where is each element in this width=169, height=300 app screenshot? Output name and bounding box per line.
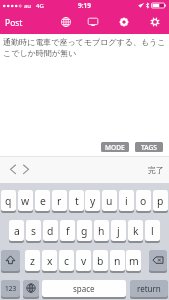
staticText: n (114, 254, 121, 268)
staticText: t (75, 194, 79, 208)
staticText: o (140, 194, 147, 208)
button[interactable] (85, 11, 101, 34)
button[interactable]: i (119, 190, 134, 212)
button[interactable] (23, 280, 39, 298)
button[interactable]: return (130, 280, 168, 298)
staticText: r (57, 194, 62, 208)
staticText: z (30, 254, 35, 268)
button[interactable]: space (42, 280, 126, 298)
button[interactable]: g (77, 220, 92, 242)
button[interactable]: s (26, 220, 41, 242)
staticText: c (64, 254, 69, 268)
staticText: Post (5, 17, 23, 29)
button[interactable]: Post (5, 17, 23, 29)
staticText: v (81, 254, 87, 268)
staticText: l (151, 224, 154, 238)
staticText: j (117, 224, 120, 238)
button[interactable]: o (136, 190, 151, 212)
button[interactable]: d (43, 220, 58, 242)
button[interactable]: 123 (1, 280, 20, 298)
button[interactable]: k (128, 220, 143, 242)
button[interactable]: m (126, 250, 141, 272)
button[interactable]: p (153, 190, 168, 212)
staticText: 4G (36, 2, 44, 10)
staticText: a (14, 224, 20, 238)
staticText: MODE (105, 143, 125, 152)
staticText: 完了 (148, 165, 164, 175)
button[interactable]: 完了 (148, 165, 164, 175)
button[interactable]: l (145, 220, 160, 242)
button[interactable]: r (52, 190, 67, 212)
button[interactable]: h (94, 220, 109, 242)
staticText: q (5, 194, 12, 208)
button[interactable] (116, 11, 132, 34)
staticText: 123 (5, 284, 17, 293)
staticText: 9:19 (78, 1, 91, 10)
button[interactable]: y (85, 190, 100, 212)
button[interactable]: v (76, 250, 91, 272)
button[interactable]: b (93, 250, 108, 272)
staticText: x (47, 254, 53, 268)
staticText: h (98, 224, 105, 238)
button[interactable] (58, 11, 74, 34)
staticText: d (47, 224, 54, 238)
staticText: space (73, 283, 95, 294)
button[interactable]: n (110, 250, 125, 272)
button[interactable] (147, 11, 163, 34)
button[interactable] (149, 250, 167, 272)
staticText: return (137, 283, 161, 294)
staticText: w (21, 194, 30, 208)
button[interactable]: z (25, 250, 40, 272)
button[interactable]: MODE (101, 142, 129, 152)
staticText: p (157, 194, 164, 208)
button[interactable]: x (42, 250, 57, 272)
staticText: i (125, 194, 128, 208)
button[interactable]: u (102, 190, 117, 212)
staticText: TAGS (141, 143, 157, 152)
staticText: e (40, 194, 46, 208)
button[interactable]: a (9, 220, 24, 242)
staticText: f (66, 224, 70, 238)
button[interactable]: q (1, 190, 16, 212)
staticText: au (24, 2, 32, 10)
staticText: m (129, 254, 139, 268)
staticText: b (97, 254, 104, 268)
button[interactable] (1, 250, 20, 272)
button[interactable]: c (59, 250, 74, 272)
button[interactable] (6, 164, 32, 175)
staticText: u (106, 194, 113, 208)
button[interactable]: e (35, 190, 50, 212)
staticText: k (133, 224, 139, 238)
staticText: g (81, 224, 88, 238)
button[interactable]: TAGS (135, 142, 163, 152)
staticText: s (31, 224, 36, 238)
button[interactable]: w (18, 190, 33, 212)
button[interactable]: f (60, 220, 75, 242)
staticText: 通勤時に電車で座ってモブログする、もうこ こでしか時間が無い (3, 37, 166, 59)
button[interactable]: j (111, 220, 126, 242)
staticText: y (90, 194, 96, 208)
button[interactable]: t (69, 190, 84, 212)
